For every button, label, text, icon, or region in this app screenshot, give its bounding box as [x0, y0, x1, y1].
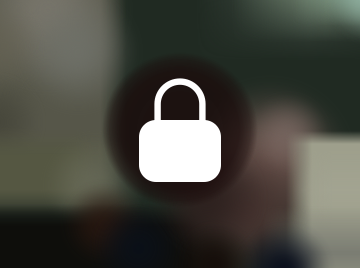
button[interactable]: Locked [0, 0, 360, 268]
